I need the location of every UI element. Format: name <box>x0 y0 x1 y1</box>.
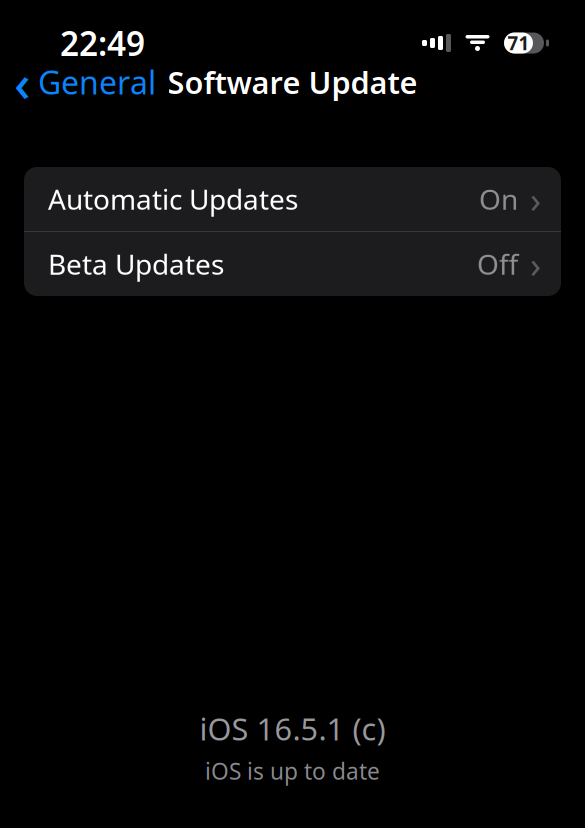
staticText: ‹ <box>14 48 31 116</box>
staticText: › <box>530 240 541 288</box>
button[interactable]: Beta Updates <box>24 232 561 296</box>
staticText: iOS is up to date <box>205 756 380 786</box>
staticText: 71 <box>507 31 529 55</box>
staticText: › <box>530 175 541 223</box>
staticText: 22:49 <box>60 21 145 65</box>
button[interactable]: ‹ <box>0 42 156 122</box>
staticText: Off <box>477 245 518 283</box>
staticText: General <box>38 61 156 103</box>
staticText: iOS 16.5.1 (c) <box>199 708 385 749</box>
staticText: On <box>479 180 518 218</box>
button[interactable]: Automatic Updates <box>24 167 561 231</box>
staticText: Software Update <box>167 62 417 102</box>
staticText: Automatic Updates <box>48 180 298 218</box>
staticText: Beta Updates <box>48 245 224 283</box>
